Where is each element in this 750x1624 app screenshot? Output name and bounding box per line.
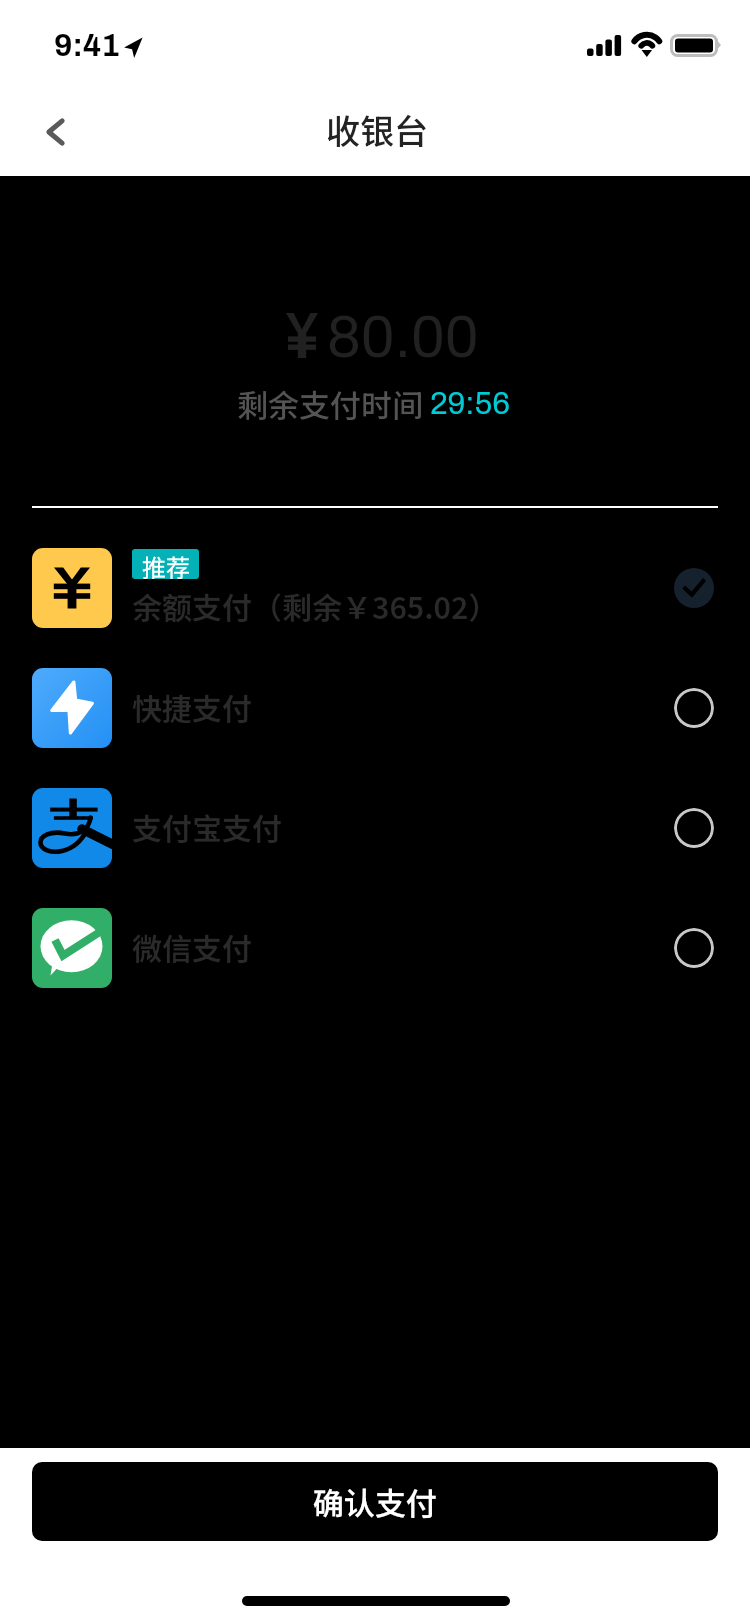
button[interactable]: 确认支付 xyxy=(32,1462,718,1541)
staticText: 剩余支付时间 xyxy=(237,381,430,426)
staticText: 80.00 xyxy=(327,305,479,369)
staticText: 收银台 xyxy=(326,105,428,154)
button[interactable]: Select payment method xyxy=(674,808,714,848)
staticText: 29:56 xyxy=(430,387,510,421)
staticText: 支付宝支付 xyxy=(132,805,282,848)
button[interactable]: Select payment method xyxy=(674,928,714,968)
button[interactable]: Selected payment method xyxy=(674,568,714,608)
button[interactable]: Select payment method xyxy=(674,688,714,728)
staticText: 推荐 xyxy=(142,549,190,579)
staticText: 9:41 xyxy=(54,29,120,63)
staticText: 微信支付 xyxy=(132,925,252,968)
staticText: 余额支付（剩余￥365.02） xyxy=(132,584,499,627)
button[interactable]: Back xyxy=(0,90,110,176)
button[interactable]: 微信支付 xyxy=(0,888,750,1008)
staticText: 快捷支付 xyxy=(132,685,252,728)
button[interactable]: 推荐 xyxy=(0,528,750,648)
staticText: 确认支付 xyxy=(313,1479,437,1524)
button[interactable]: 快捷支付 xyxy=(0,648,750,768)
button[interactable]: 支付宝支付 xyxy=(0,768,750,888)
